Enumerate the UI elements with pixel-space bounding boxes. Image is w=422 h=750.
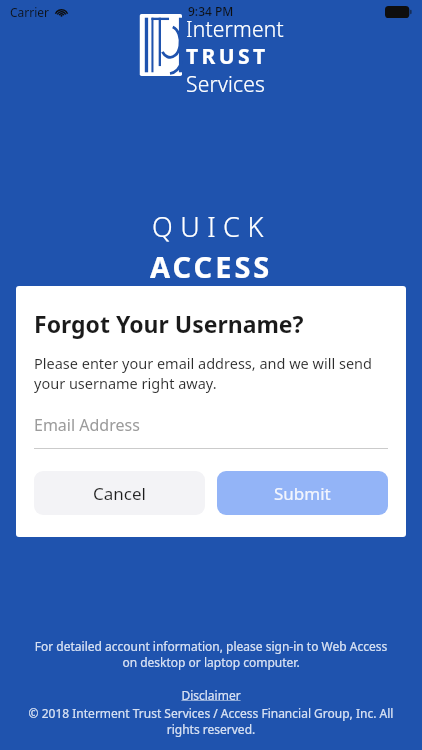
button[interactable]: Email Address: [34, 414, 388, 449]
button[interactable]: Cancel: [34, 471, 205, 515]
button[interactable]: Submit: [217, 471, 388, 515]
button[interactable]: Disclaimer: [181, 687, 241, 703]
staticText: Interment: [186, 15, 284, 44]
staticText: TRUST: [186, 42, 269, 71]
staticText: Email Address: [34, 414, 140, 436]
staticText: Disclaimer: [181, 687, 241, 703]
staticText: Submit: [274, 482, 331, 505]
staticText: For detailed account information, please…: [26, 638, 396, 671]
staticText: 9:34 PM: [188, 3, 234, 19]
staticText: Carrier: [10, 4, 50, 20]
staticText: Forgot Your Username?: [34, 308, 304, 339]
staticText: © 2018 Interment Trust Services / Access…: [26, 705, 396, 738]
staticText: Please enter your email address, and we …: [34, 353, 388, 394]
staticText: Services: [186, 70, 266, 99]
staticText: Cancel: [93, 482, 146, 505]
staticText: QUICK: [152, 208, 271, 245]
staticText: ACCESS: [150, 247, 273, 286]
